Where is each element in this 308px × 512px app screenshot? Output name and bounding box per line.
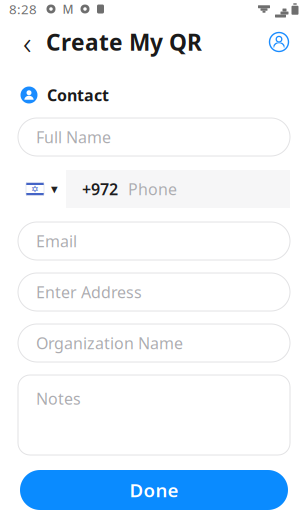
button[interactable]: Enter Address [18,273,290,311]
button[interactable]: Notes [18,375,290,455]
staticText: ✡ [31,184,39,194]
staticText: Email [36,230,77,252]
button[interactable]: Done [20,470,288,510]
button[interactable]: Organization Name [18,324,290,362]
staticText: Contact [47,84,109,106]
staticText: Enter Address [36,281,142,303]
staticText: M [62,1,73,17]
staticText: Phone [128,178,177,200]
staticText: Organization Name [36,332,183,354]
button[interactable]: Full Name [18,118,290,156]
button[interactable]: Back [14,25,40,59]
button[interactable]: Select country code [18,170,66,208]
staticText: Notes [36,388,81,409]
staticText: Full Name [36,126,111,148]
staticText: +972 [82,178,118,200]
staticText: ‹ [23,21,31,63]
button[interactable]: Email [18,222,290,260]
button[interactable]: +972 [66,170,290,208]
staticText: Create My QR [46,27,202,57]
staticText: ▾ [51,181,58,196]
staticText: Done [129,478,178,502]
button[interactable]: Profile [264,27,294,57]
staticText: 8:28 [9,0,37,18]
